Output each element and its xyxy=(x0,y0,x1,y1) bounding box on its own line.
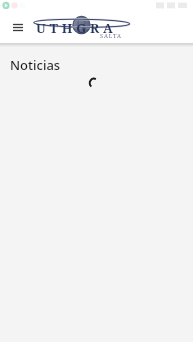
staticText: SALTA xyxy=(100,32,123,40)
button[interactable]: Open navigation menu xyxy=(5,17,31,39)
staticText: UTHGRA xyxy=(36,19,117,37)
staticText: Noticias xyxy=(10,56,61,74)
